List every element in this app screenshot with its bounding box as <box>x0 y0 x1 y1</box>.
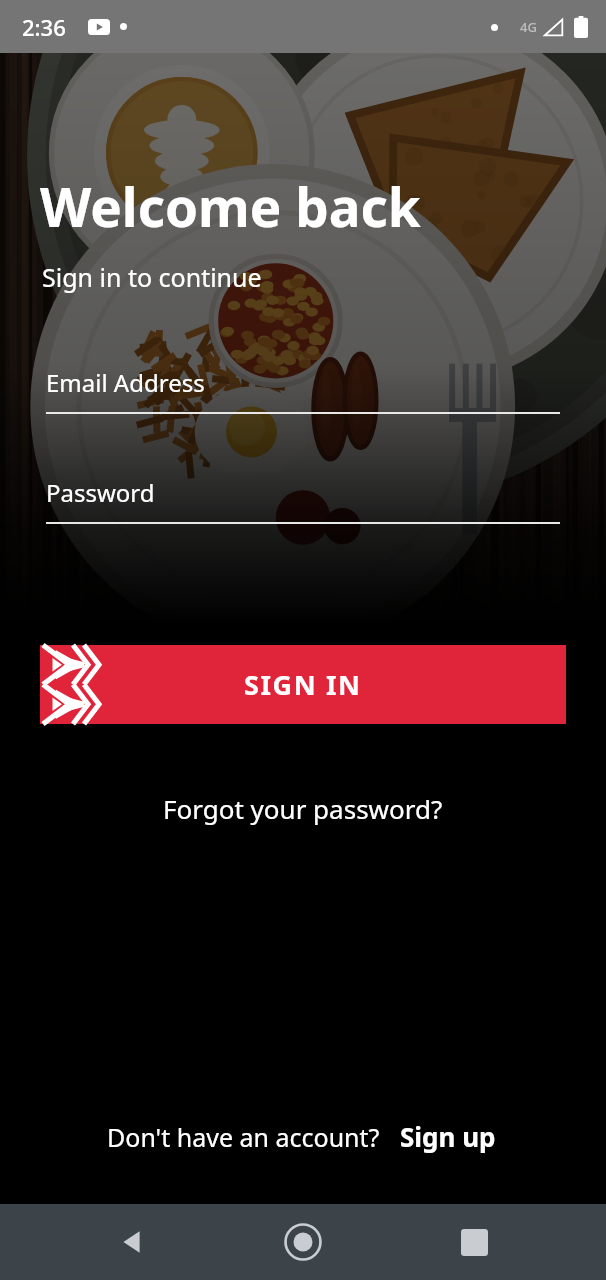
button[interactable]: SIGN IN <box>40 645 566 724</box>
button[interactable]: Password <box>46 476 560 524</box>
button[interactable]: Home <box>265 1204 341 1280</box>
staticText: 2:36 <box>22 12 66 42</box>
staticText: Don't have an account? <box>107 1120 380 1154</box>
staticText: Password <box>46 476 155 509</box>
staticText: SIGN IN <box>244 666 362 703</box>
staticText: Email Address <box>46 366 205 399</box>
button[interactable]: Recent apps <box>436 1204 512 1280</box>
button[interactable]: Back <box>95 1204 171 1280</box>
staticText: Sign in to continue <box>42 260 262 294</box>
button[interactable]: Sign up <box>396 1113 500 1160</box>
button[interactable]: Email Address <box>46 366 560 414</box>
staticText: Welcome back <box>40 170 421 242</box>
button[interactable]: Forgot your password? <box>149 783 457 834</box>
staticText: 4G <box>520 18 537 36</box>
